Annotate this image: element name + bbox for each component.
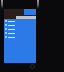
button[interactable] <box>4 27 36 31</box>
button[interactable]: Home <box>30 64 35 69</box>
button[interactable] <box>4 23 36 27</box>
button[interactable] <box>4 35 36 39</box>
button[interactable] <box>4 31 36 35</box>
button[interactable] <box>4 19 36 23</box>
